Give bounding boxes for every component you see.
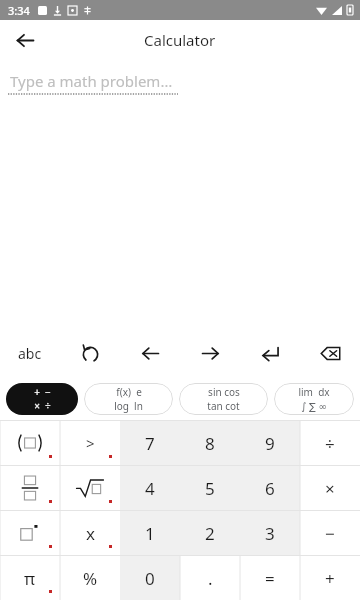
staticText: > (86, 433, 95, 453)
staticText: log ln (114, 399, 143, 413)
button[interactable]: Left (120, 328, 180, 378)
staticText: + (325, 567, 335, 590)
staticText: 1 (145, 522, 155, 545)
button[interactable]: 8 (180, 421, 240, 465)
staticText: lim dx (298, 385, 330, 399)
button[interactable]: 1 (120, 511, 180, 555)
staticText: 3:34 (8, 3, 30, 18)
button[interactable]: ÷ (300, 421, 360, 465)
staticText: abc (18, 344, 42, 363)
staticText: ∫ ∑ ∞ (301, 399, 327, 413)
staticText: + − (34, 385, 51, 399)
staticText: % (83, 567, 98, 590)
button[interactable]: × (300, 466, 360, 510)
button[interactable]: sin cos (179, 383, 268, 415)
staticText: π (24, 567, 36, 590)
button[interactable]: 5 (180, 466, 240, 510)
button[interactable]: 9 (240, 421, 300, 465)
button[interactable]: f(x) e (84, 383, 173, 415)
staticText: 5 (205, 477, 215, 500)
staticText: ÷ (325, 432, 335, 455)
button[interactable] (0, 466, 60, 510)
button[interactable]: Right (180, 328, 240, 378)
staticText: f(x) e (116, 385, 142, 399)
button[interactable]: 3 (240, 511, 300, 555)
staticText: 2 (205, 522, 215, 545)
button[interactable]: Undo (60, 328, 120, 378)
staticText: 6 (265, 477, 275, 500)
staticText: Type a math problem… (10, 71, 173, 91)
button[interactable] (60, 466, 120, 510)
staticText: 3 (265, 522, 275, 545)
button[interactable] (0, 421, 60, 465)
staticText: 0 (145, 567, 155, 590)
button[interactable]: Back (8, 23, 42, 57)
staticText: 7 (145, 432, 155, 455)
staticText: Calculator (144, 30, 216, 50)
button[interactable]: Enter (240, 328, 300, 378)
staticText: sin cos (208, 385, 240, 399)
button[interactable]: > (60, 421, 120, 465)
staticText: 9 (265, 432, 275, 455)
button[interactable]: − (300, 511, 360, 555)
staticText: 8 (205, 432, 215, 455)
button[interactable]: 2 (180, 511, 240, 555)
staticText: = (265, 567, 275, 590)
button[interactable]: 7 (120, 421, 180, 465)
button[interactable]: 4 (120, 466, 180, 510)
button[interactable]: π (0, 556, 60, 600)
button[interactable]: 0 (120, 556, 180, 600)
staticText: . (208, 567, 213, 590)
staticText: × ÷ (34, 399, 51, 413)
button[interactable]: abc (0, 328, 60, 378)
button[interactable]: . (180, 556, 240, 600)
button[interactable]: lim dx (274, 383, 354, 415)
button[interactable]: Backspace (300, 328, 360, 378)
staticText: 4 (145, 477, 155, 500)
button[interactable]: = (240, 556, 300, 600)
staticText: tan cot (207, 399, 240, 413)
button[interactable]: 6 (240, 466, 300, 510)
button[interactable]: + − (6, 383, 78, 415)
button[interactable]: + (300, 556, 360, 600)
staticText: − (325, 522, 335, 545)
staticText: × (325, 477, 335, 500)
button[interactable]: % (60, 556, 120, 600)
button[interactable]: x (60, 511, 120, 555)
button[interactable] (0, 511, 60, 555)
staticText: x (86, 522, 95, 545)
